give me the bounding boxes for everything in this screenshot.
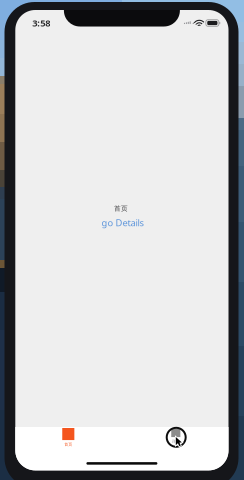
staticText: 首页	[64, 442, 72, 447]
button[interactable]: go Details	[102, 216, 144, 229]
staticText: 首页	[114, 204, 128, 213]
staticText: go Details	[102, 216, 144, 229]
staticText: 3:58	[32, 17, 50, 29]
button[interactable]: 详情	[171, 429, 180, 444]
staticText: 详情	[172, 439, 180, 444]
button[interactable]: 首页	[62, 428, 74, 447]
